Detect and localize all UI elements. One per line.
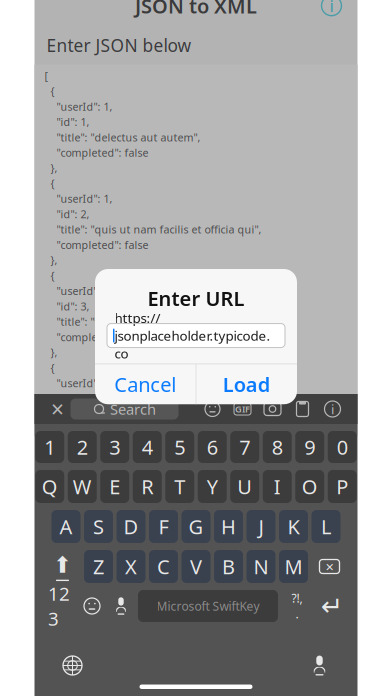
button[interactable]: Dictate	[299, 648, 339, 682]
button[interactable]: 5	[165, 431, 194, 463]
button[interactable]: Camera	[257, 396, 287, 422]
button[interactable]: Microsoft SwiftKey	[138, 590, 278, 622]
button[interactable]: Next keyboard	[52, 648, 92, 682]
button[interactable]: V	[181, 550, 210, 583]
button[interactable]: G	[181, 510, 210, 543]
button[interactable]: K	[279, 510, 308, 543]
button[interactable]: J	[246, 510, 275, 543]
staticText: Enter URL	[147, 285, 244, 312]
button[interactable]: E	[100, 470, 129, 503]
button[interactable]: 123	[44, 591, 74, 621]
button[interactable]: Emoji	[197, 396, 227, 422]
staticText: O	[302, 473, 318, 500]
staticText: I	[274, 473, 281, 500]
staticText: "userId": 1,	[44, 99, 112, 114]
button[interactable]: T	[165, 470, 194, 503]
button[interactable]: 1	[35, 431, 64, 463]
button[interactable]: B	[214, 550, 243, 583]
staticText: 9	[304, 434, 315, 460]
button[interactable]: P	[328, 470, 357, 503]
button[interactable]: 2	[68, 431, 97, 463]
button[interactable]: 8	[263, 431, 292, 463]
button[interactable]: N	[246, 550, 275, 583]
button[interactable]: Settings	[317, 396, 347, 422]
button[interactable]: 4	[133, 431, 162, 463]
button[interactable]: O	[295, 470, 324, 503]
staticText: V	[190, 553, 202, 580]
button[interactable]: R	[133, 470, 162, 503]
staticText: Cancel	[114, 371, 176, 398]
staticText: J	[258, 513, 263, 540]
button[interactable]: C	[149, 550, 178, 583]
button[interactable]: Y	[198, 470, 227, 503]
button[interactable]: W	[68, 470, 97, 503]
button[interactable]: F	[149, 510, 178, 543]
staticText: S	[93, 513, 104, 540]
button[interactable]: Q	[35, 470, 64, 503]
button[interactable]: A	[51, 510, 80, 543]
button[interactable]: I	[263, 470, 292, 503]
staticText: [	[44, 69, 48, 83]
staticText: {	[44, 84, 54, 98]
staticText: {	[44, 361, 54, 375]
button[interactable]: X	[116, 550, 145, 583]
button[interactable]: 7	[230, 431, 259, 463]
staticText: W	[73, 473, 92, 500]
staticText: "userId": 1,	[44, 376, 112, 390]
button[interactable]: GIF	[227, 396, 257, 422]
staticText: C	[157, 553, 170, 580]
staticText: {	[44, 268, 54, 283]
staticText: P	[336, 473, 348, 500]
button[interactable]: 3	[100, 431, 129, 463]
staticText: G	[188, 513, 203, 540]
staticText: "userId": 1,	[44, 192, 112, 206]
staticText: Microsoft SwiftKey	[156, 598, 259, 614]
button[interactable]: M	[279, 550, 308, 583]
button[interactable]: Close	[44, 396, 70, 422]
button[interactable]: Info	[315, 0, 347, 22]
staticText: X	[125, 553, 137, 580]
staticText: "completed": false	[44, 145, 148, 160]
staticText: T	[174, 473, 185, 500]
button[interactable]: Shift	[44, 550, 80, 583]
staticText: Search	[110, 399, 156, 419]
staticText: "userId": 1,	[44, 284, 112, 298]
button[interactable]: S	[84, 510, 113, 543]
staticText: Q	[42, 473, 58, 500]
staticText: L	[321, 513, 331, 540]
staticText: ×	[51, 394, 64, 424]
staticText: i	[331, 400, 334, 418]
staticText: 3	[109, 434, 120, 460]
staticText: "title": "et porro tempora",	[44, 407, 187, 421]
staticText: D	[123, 513, 138, 540]
button[interactable]: Cancel	[95, 364, 196, 404]
staticText: B	[222, 553, 235, 580]
staticText: H	[221, 513, 236, 540]
button[interactable]: L	[311, 510, 340, 543]
button[interactable]: Load	[196, 364, 297, 404]
button[interactable]: Z	[84, 550, 113, 583]
staticText: 4	[142, 434, 153, 460]
button[interactable]: Clipboard	[287, 396, 317, 422]
staticText: K	[287, 513, 299, 540]
staticText: Y	[207, 473, 218, 500]
staticText: 0	[337, 434, 348, 460]
button[interactable]: D	[116, 510, 145, 543]
staticText: GIF	[235, 403, 250, 415]
button[interactable]: Return	[316, 591, 348, 621]
button[interactable]: 9	[295, 431, 324, 463]
button[interactable]: Punctuation	[284, 591, 310, 621]
button[interactable]: 6	[198, 431, 227, 463]
button[interactable]: Emoji	[80, 591, 104, 621]
button[interactable]: 0	[328, 431, 357, 463]
staticText: "completed": false	[44, 238, 148, 252]
staticText: A	[59, 513, 72, 540]
button[interactable]: H	[214, 510, 243, 543]
button[interactable]: Dictate	[110, 591, 132, 621]
button[interactable]: Backspace	[311, 550, 347, 583]
staticText: },	[44, 253, 57, 267]
staticText: E	[109, 473, 120, 500]
button[interactable]: Search	[70, 398, 178, 419]
staticText: ×	[325, 557, 333, 576]
button[interactable]: U	[230, 470, 259, 503]
